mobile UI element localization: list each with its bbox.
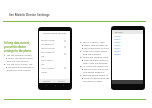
staticText: Tap the device name to — [83, 74, 108, 77]
staticText: Option — [114, 38, 121, 41]
staticText: On the Settings screen, — [7, 54, 33, 57]
staticText: been applied correctly, — [84, 59, 109, 62]
staticText: My Device 01 — [41, 43, 55, 46]
staticText: Option — [114, 41, 121, 44]
staticText: connection status. — [83, 80, 103, 83]
button[interactable]: Never — [41, 70, 70, 74]
button[interactable]: Server Group — [41, 46, 70, 50]
button[interactable]: Device Name — [41, 38, 70, 42]
staticText: Option — [114, 50, 121, 53]
button[interactable]: Option — [114, 35, 143, 38]
button[interactable]: On — [41, 62, 70, 66]
staticText: 2. — [4, 63, 6, 66]
staticText: and tap Connect. — [83, 53, 102, 56]
staticText: 4. — [80, 50, 82, 53]
staticText: Enter the code shown. — [7, 69, 32, 72]
staticText: Set Mobile Device Settings — [9, 13, 50, 17]
staticText: Tap the Sync option. — [7, 60, 29, 63]
button[interactable]: Option — [114, 50, 143, 53]
button[interactable]: Auto Update — [41, 66, 70, 70]
staticText: Auto Update — [41, 67, 54, 70]
staticText: 5. — [80, 56, 82, 59]
staticText: select the device name. — [8, 57, 34, 60]
staticText: Mobile Device Settings — [43, 32, 67, 35]
staticText: you set the device — [4, 45, 27, 48]
staticText: To check the device list, — [83, 65, 109, 68]
staticText: Enter the server name — [83, 50, 108, 53]
staticText: 1. — [4, 54, 6, 57]
staticText: 6. — [80, 65, 82, 68]
staticText: wait a few seconds for — [84, 44, 108, 47]
staticText: 3. — [80, 41, 82, 44]
staticText: Never — [41, 71, 48, 74]
staticText: then close the window. — [83, 62, 108, 65]
button[interactable]: Sync Interval — [41, 50, 70, 54]
staticText: show its details and the — [84, 77, 110, 80]
staticText: Option — [114, 44, 121, 47]
staticText: Option — [114, 35, 121, 38]
staticText: Device Name — [41, 39, 55, 42]
staticText: Verify the settings have — [83, 56, 109, 59]
staticText: Off — [41, 55, 45, 58]
button[interactable]: Sync Status — [41, 58, 70, 62]
staticText: tap the List icon at top. — [84, 68, 109, 71]
staticText: Settings — [115, 31, 123, 34]
staticText: 7. — [80, 74, 82, 77]
staticText: Server Group — [41, 47, 55, 50]
button[interactable]: Option — [114, 44, 143, 47]
staticText: Tap to confirm, then — [83, 41, 105, 44]
staticText: Sync Status — [41, 59, 53, 62]
button[interactable]: Option — [114, 38, 143, 41]
button[interactable]: Option — [114, 53, 143, 56]
button[interactable]: My Device 01 — [41, 42, 70, 46]
staticText: To keep data current, — [4, 41, 30, 44]
button[interactable]: Off — [41, 54, 70, 58]
staticText: Sync Interval — [41, 51, 55, 54]
staticText: the device to connect to. — [8, 66, 35, 69]
staticText: On — [41, 63, 45, 66]
staticText: On the Sync screen, tap — [7, 63, 33, 66]
staticText: Option — [114, 47, 121, 50]
staticText: Option — [114, 53, 121, 56]
button[interactable]: Option — [114, 41, 143, 44]
staticText: The device appears. — [83, 71, 105, 74]
staticText: the connection to start. — [84, 47, 110, 50]
button[interactable]: Option — [114, 47, 143, 50]
staticText: settings for the phone. — [4, 49, 32, 52]
